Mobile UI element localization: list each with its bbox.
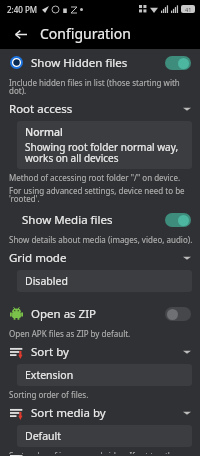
staticText: Method of accessing root folder "/" on d…	[9, 172, 181, 183]
staticText: Sort order of images and video. If set t…	[9, 450, 194, 454]
button[interactable]: Open as ZIP	[0, 300, 200, 327]
staticText: Default	[25, 429, 62, 443]
button[interactable]: Show Media files	[0, 206, 200, 233]
staticText: Sort media by	[31, 405, 183, 421]
staticText: Open as ZIP	[31, 306, 165, 322]
staticText: Normal	[25, 125, 63, 139]
button[interactable]: Default	[17, 425, 192, 447]
staticText: Show details about media (images, video,…	[9, 234, 193, 245]
button[interactable]: Sort by	[0, 341, 200, 363]
button[interactable]: Grid mode	[0, 247, 200, 269]
button[interactable]: Root access	[0, 98, 200, 120]
button[interactable]: Extension	[17, 364, 192, 386]
staticText: Extension	[25, 368, 74, 382]
staticText: 41	[185, 6, 192, 13]
button[interactable]: Disabled	[17, 270, 192, 292]
button[interactable]: Back	[8, 22, 32, 46]
staticText: 2:40 PM	[7, 4, 38, 15]
staticText: Showing root folder normal way, works on…	[25, 140, 184, 165]
staticText: Grid mode	[9, 250, 183, 266]
button[interactable]: Sort media by	[0, 402, 200, 424]
staticText: Show Hidden files	[31, 55, 165, 71]
staticText: Disabled	[25, 274, 68, 288]
staticText: Show Media files	[22, 212, 165, 228]
staticText: Configuration	[40, 24, 131, 43]
button[interactable]: Off	[165, 307, 191, 321]
button[interactable]: Show Hidden files	[0, 49, 200, 76]
staticText: For using advanced settings, device need…	[9, 185, 194, 204]
staticText: Include hidden files in list (those star…	[9, 77, 194, 96]
button[interactable]: Normal	[17, 121, 192, 169]
staticText: Sorting order of files.	[9, 389, 89, 400]
button[interactable]: On	[165, 213, 191, 227]
staticText: Sort by	[31, 344, 183, 360]
staticText: Root access	[9, 101, 183, 117]
staticText: Open APK files as ZIP by default.	[9, 328, 131, 339]
button[interactable]: On	[165, 56, 191, 70]
